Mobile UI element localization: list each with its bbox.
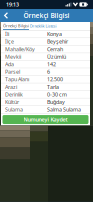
staticText: 6 bbox=[47, 68, 50, 75]
staticText: Arazi bbox=[5, 83, 17, 90]
staticText: Tarla bbox=[47, 83, 59, 90]
staticText: Tapu Alanı bbox=[5, 76, 29, 83]
staticText: Cerrah bbox=[47, 46, 63, 53]
staticText: İli bbox=[5, 30, 9, 38]
staticText: 0-30 cm bbox=[47, 91, 67, 98]
staticText: İlçe bbox=[5, 38, 14, 45]
staticText: Konya bbox=[47, 30, 62, 38]
button[interactable]: Örnekçi Bilgisi bbox=[3, 22, 29, 30]
staticText: Derinlik bbox=[5, 91, 23, 98]
staticText: Üzümlü bbox=[47, 53, 66, 60]
staticText: Salma Sulama bbox=[47, 106, 81, 113]
staticText: 12.500 bbox=[47, 76, 63, 83]
button[interactable]: Örneklik Listesi bbox=[29, 22, 57, 30]
staticText: 142 bbox=[47, 61, 56, 68]
staticText: Mevkii bbox=[5, 53, 21, 60]
staticText: Örnekçi Bilgisi bbox=[3, 23, 29, 28]
staticText: Parsel bbox=[5, 68, 20, 75]
staticText: 19:13 bbox=[6, 1, 19, 8]
staticText: Sulama bbox=[5, 106, 23, 113]
staticText: Kültür bbox=[5, 98, 19, 105]
button[interactable]: Back bbox=[0, 9, 12, 22]
staticText: Örneklik Listesi bbox=[29, 23, 56, 29]
staticText: Buğday bbox=[47, 98, 65, 105]
staticText: Ada bbox=[5, 61, 14, 68]
staticText: Mahalle/Köy bbox=[5, 46, 35, 53]
staticText: Numuneyi Kaydet bbox=[23, 116, 67, 123]
staticText: Beyşehir bbox=[47, 38, 68, 45]
staticText: Örnekçi Bilgisi bbox=[23, 11, 69, 20]
button[interactable]: Numuneyi Kaydet bbox=[2, 115, 88, 124]
